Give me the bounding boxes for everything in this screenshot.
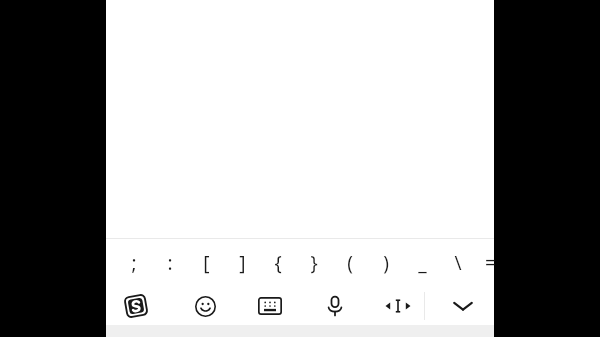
staticText: [	[203, 250, 210, 276]
staticText: \	[454, 250, 462, 276]
staticText: :	[167, 250, 173, 276]
button[interactable]: =	[476, 239, 504, 287]
button[interactable]: ]	[224, 239, 260, 287]
button[interactable]: \	[440, 239, 476, 287]
staticText: {	[274, 250, 282, 276]
button[interactable]: Move cursor	[376, 287, 420, 325]
button[interactable]: ;	[116, 239, 152, 287]
button[interactable]: Switch keyboard	[248, 287, 292, 325]
staticText: ]	[239, 250, 246, 276]
button[interactable]: (	[332, 239, 368, 287]
button[interactable]: )	[368, 239, 404, 287]
button[interactable]: Voice input	[313, 287, 357, 325]
staticText: _	[418, 250, 427, 276]
staticText: )	[383, 250, 389, 276]
staticText: (	[347, 250, 353, 276]
button[interactable]: Input method settings	[114, 287, 158, 325]
staticText: }	[310, 250, 318, 276]
button[interactable]: {	[260, 239, 296, 287]
staticText: =	[485, 250, 496, 276]
button[interactable]: Hide keyboard	[441, 287, 485, 325]
button[interactable]: Emoji	[183, 287, 227, 325]
staticText: ;	[131, 250, 137, 276]
button[interactable]: }	[296, 239, 332, 287]
button[interactable]: _	[404, 239, 440, 287]
button[interactable]: [	[188, 239, 224, 287]
button[interactable]: :	[152, 239, 188, 287]
